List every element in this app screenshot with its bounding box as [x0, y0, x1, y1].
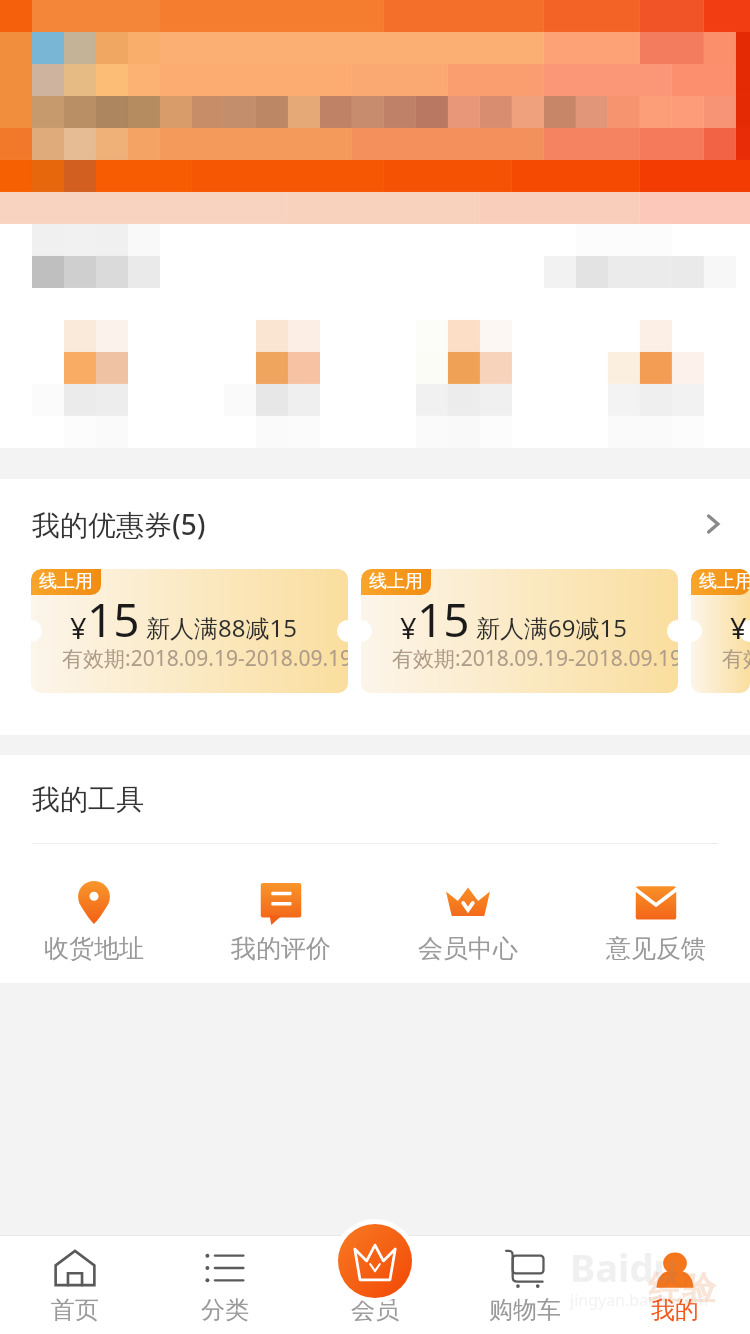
staticText: 有效期:2018.09.19-2018.09.19 — [392, 644, 678, 673]
staticText: Baidu — [570, 1241, 679, 1293]
staticText: 15 — [747, 588, 750, 651]
staticText: 新人满69减15 — [476, 611, 627, 644]
button[interactable]: 我的评价 — [187, 880, 374, 964]
staticText: 线上用 — [39, 570, 93, 593]
staticText: 经验 — [648, 1267, 716, 1310]
staticText: ¥ — [730, 608, 747, 647]
button[interactable]: 我的 — [600, 1235, 750, 1334]
button[interactable]: 首页 — [0, 1235, 150, 1334]
staticText: 我的评价 — [231, 933, 331, 964]
button[interactable]: 意见反馈 — [562, 880, 750, 964]
staticText: 我的工具 — [32, 782, 144, 817]
staticText: 线上用 — [699, 570, 750, 593]
button[interactable]: 会员中心 — [374, 880, 562, 964]
button[interactable]: 会员 — [338, 1224, 412, 1298]
staticText: 线上用 — [369, 570, 423, 593]
staticText: 首页 — [51, 1295, 99, 1325]
button[interactable]: 收货地址 — [0, 880, 187, 964]
staticText: 购物车 — [489, 1295, 561, 1325]
staticText: 意见反馈 — [606, 933, 706, 964]
staticText: 有效期:2018.09.19-2018.09.19 — [722, 644, 750, 673]
staticText: 分类 — [201, 1295, 249, 1325]
staticText: 有效期:2018.09.19-2018.09.19 — [62, 644, 348, 673]
staticText: 会员 — [351, 1295, 399, 1325]
button[interactable]: 我的优惠券(5) — [0, 479, 750, 569]
button[interactable]: 线上用 — [361, 569, 678, 693]
staticText: ¥ — [70, 608, 87, 647]
button[interactable]: 线上用 — [31, 569, 348, 693]
button[interactable]: 购物车 — [450, 1235, 600, 1334]
staticText: ¥ — [400, 608, 417, 647]
staticText: 15 — [417, 588, 470, 651]
staticText: 我的 — [651, 1295, 699, 1325]
staticText: 我的优惠券(5) — [32, 505, 206, 543]
staticText: 15 — [87, 588, 140, 651]
staticText: 新人满88减15 — [146, 611, 297, 644]
button[interactable]: 分类 — [150, 1235, 300, 1334]
staticText: 会员中心 — [418, 933, 518, 964]
button[interactable]: 线上用 — [691, 569, 750, 693]
button[interactable]: 会员 — [300, 1235, 450, 1334]
staticText: jingyan.baidu.com — [570, 1289, 709, 1311]
staticText: 收货地址 — [44, 933, 144, 964]
